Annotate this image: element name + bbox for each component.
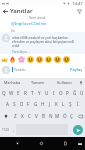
button[interactable]: U bbox=[43, 87, 50, 98]
staticText: W bbox=[9, 90, 14, 96]
button[interactable]: J bbox=[46, 98, 53, 110]
button[interactable]: İ bbox=[74, 98, 81, 110]
button[interactable]: Ş bbox=[67, 98, 74, 110]
button[interactable]: C bbox=[26, 110, 33, 122]
button[interactable]: Ğ bbox=[71, 87, 78, 98]
button[interactable]: Crown reaction bbox=[0, 54, 8, 64]
button[interactable]: Paylaş bbox=[70, 67, 83, 72]
button[interactable]: I bbox=[50, 87, 57, 98]
button[interactable]: altas.n0tBursabzd ve yurt başkanları bbox=[0, 32, 85, 54]
button[interactable]: Back bbox=[13, 139, 22, 148]
staticText: Paylaş bbox=[70, 67, 83, 72]
button[interactable]: T bbox=[29, 87, 36, 98]
button[interactable]: Send bbox=[73, 125, 83, 135]
button[interactable]: B bbox=[40, 110, 47, 122]
button[interactable]: R bbox=[22, 87, 29, 98]
button[interactable]: Laugh reaction bbox=[35, 54, 44, 64]
staticText: G bbox=[34, 101, 38, 107]
button[interactable]: L bbox=[60, 98, 67, 110]
staticText: Q bbox=[2, 90, 6, 96]
button[interactable]: P bbox=[64, 87, 71, 98]
staticText: Yanıtla... bbox=[14, 67, 28, 72]
button[interactable]: Z bbox=[11, 110, 19, 122]
button[interactable]: Fire reaction bbox=[8, 54, 17, 64]
staticText: L bbox=[62, 101, 65, 107]
staticText: Merhaba bbox=[4, 80, 21, 85]
staticText: A bbox=[6, 101, 9, 107]
staticText: 14:47 bbox=[72, 1, 83, 7]
button[interactable]: Y bbox=[36, 87, 43, 98]
staticText: T bbox=[31, 90, 34, 96]
button[interactable]: H bbox=[39, 98, 46, 110]
button[interactable]: Switch keyboard bbox=[75, 139, 84, 148]
button[interactable]: Ç bbox=[68, 110, 75, 122]
staticText: J bbox=[49, 101, 51, 107]
staticText: . bbox=[70, 127, 72, 132]
button[interactable]: G bbox=[32, 98, 39, 110]
staticText: Ü bbox=[80, 90, 84, 96]
button[interactable]: Merhaba bbox=[0, 78, 25, 87]
button[interactable]: Heart eyes reaction bbox=[62, 54, 71, 64]
staticText: O bbox=[59, 90, 63, 96]
button[interactable]: D bbox=[18, 98, 25, 110]
staticText: Yanıtlayın... bbox=[12, 49, 30, 53]
staticText: R bbox=[24, 90, 27, 96]
button[interactable]: N bbox=[47, 110, 54, 122]
button[interactable]: Ö bbox=[61, 110, 68, 122]
button[interactable]: Recent apps bbox=[61, 139, 70, 148]
button[interactable]: V bbox=[33, 110, 40, 122]
button[interactable]: W bbox=[8, 87, 15, 98]
button[interactable]: Kullanıcı bbox=[51, 78, 77, 87]
button[interactable]: M bbox=[54, 110, 61, 122]
button[interactable]: Voice input bbox=[77, 78, 85, 87]
button[interactable]: Ü bbox=[78, 87, 85, 98]
staticText: , bbox=[13, 127, 15, 132]
staticText: altas.n0tBursabzd ve yurt başkanları bbox=[12, 35, 69, 39]
button[interactable]: E bbox=[15, 87, 22, 98]
staticText: P bbox=[66, 90, 69, 96]
button[interactable]: Shift bbox=[0, 110, 11, 122]
button[interactable]: Cry reaction bbox=[44, 54, 53, 64]
staticText: Ö bbox=[63, 113, 67, 119]
button[interactable]: Q bbox=[0, 87, 8, 98]
staticText: K bbox=[55, 101, 58, 107]
button[interactable]: Backspace bbox=[75, 110, 85, 122]
staticText: M bbox=[55, 113, 60, 119]
button[interactable]: Smile reaction bbox=[26, 54, 35, 64]
button[interactable]: Filter bbox=[73, 7, 85, 15]
staticText: B bbox=[42, 113, 45, 119]
button[interactable]: O bbox=[57, 87, 64, 98]
button[interactable]: Flower reaction bbox=[17, 54, 26, 64]
staticText: Ş bbox=[69, 101, 72, 107]
staticText: @IngilizceCOnline bbox=[11, 21, 47, 27]
staticText: U bbox=[45, 90, 49, 96]
staticText: Ğ bbox=[73, 90, 77, 96]
staticText: İ bbox=[77, 101, 79, 107]
button[interactable]: Symbols bbox=[0, 122, 11, 137]
staticText: H bbox=[41, 101, 45, 107]
staticText: Y bbox=[38, 90, 41, 96]
staticText: Ç bbox=[70, 113, 73, 119]
staticText: ?123 bbox=[2, 128, 9, 132]
button[interactable]: Back bbox=[0, 7, 10, 15]
staticText: S bbox=[13, 101, 16, 107]
staticText: Yanıt olarak bbox=[29, 16, 46, 20]
button[interactable]: Wink reaction bbox=[53, 54, 62, 64]
button[interactable]: F bbox=[25, 98, 32, 110]
button[interactable]: Comma bbox=[11, 122, 16, 137]
button[interactable]: Home bbox=[37, 139, 46, 148]
staticText: efendim ve paylaşım abisi iktiyaçlarınız… bbox=[12, 39, 75, 43]
button[interactable]: Tamam bbox=[25, 78, 51, 87]
staticText: X bbox=[21, 113, 24, 119]
staticText: ciddi bbox=[12, 43, 20, 47]
button[interactable]: S bbox=[11, 98, 18, 110]
staticText: F bbox=[27, 101, 30, 107]
staticText: V bbox=[35, 113, 38, 119]
staticText: Yanıtlar bbox=[10, 7, 33, 15]
button[interactable]: X bbox=[19, 110, 26, 122]
button[interactable]: K bbox=[53, 98, 60, 110]
button[interactable]: A bbox=[4, 98, 11, 110]
staticText: Ön bbox=[11, 29, 16, 32]
